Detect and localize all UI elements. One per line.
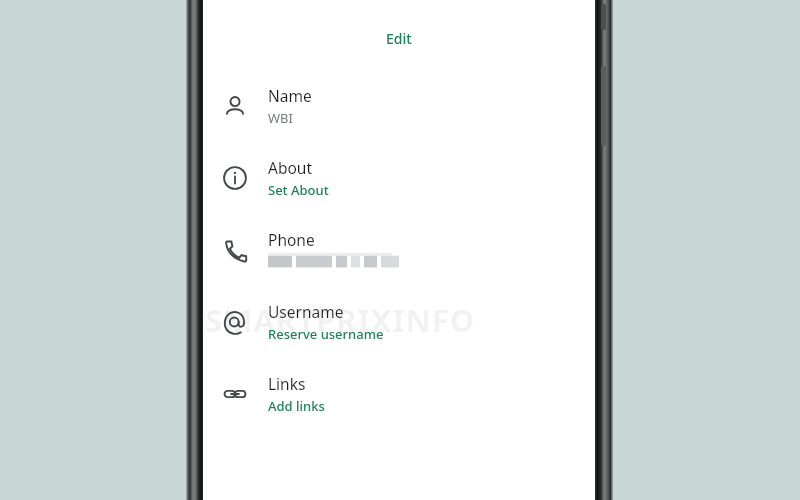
staticText: Add links xyxy=(268,397,325,415)
staticText: SMARTPRIXINFO xyxy=(205,299,476,341)
other: Phone xyxy=(222,237,248,263)
staticText: Links xyxy=(268,373,306,394)
staticText: Name xyxy=(268,85,312,106)
button[interactable]: Phone xyxy=(203,214,595,286)
staticText: Set About xyxy=(268,181,329,199)
button[interactable]: Name xyxy=(203,70,595,142)
other: Username xyxy=(222,309,248,335)
staticText: Phone xyxy=(268,229,315,250)
staticText: Username xyxy=(268,301,344,322)
staticText: Reserve username xyxy=(268,325,384,343)
button[interactable]: Username xyxy=(203,286,595,358)
button[interactable]: Edit xyxy=(372,26,426,51)
button[interactable]: Links xyxy=(203,358,595,430)
staticText: Edit xyxy=(386,29,412,48)
staticText: WBI xyxy=(268,109,293,127)
other: Links xyxy=(222,381,248,407)
staticText: About xyxy=(268,157,312,178)
other: About xyxy=(222,165,248,191)
button[interactable]: About xyxy=(203,142,595,214)
other: Name xyxy=(222,93,248,119)
